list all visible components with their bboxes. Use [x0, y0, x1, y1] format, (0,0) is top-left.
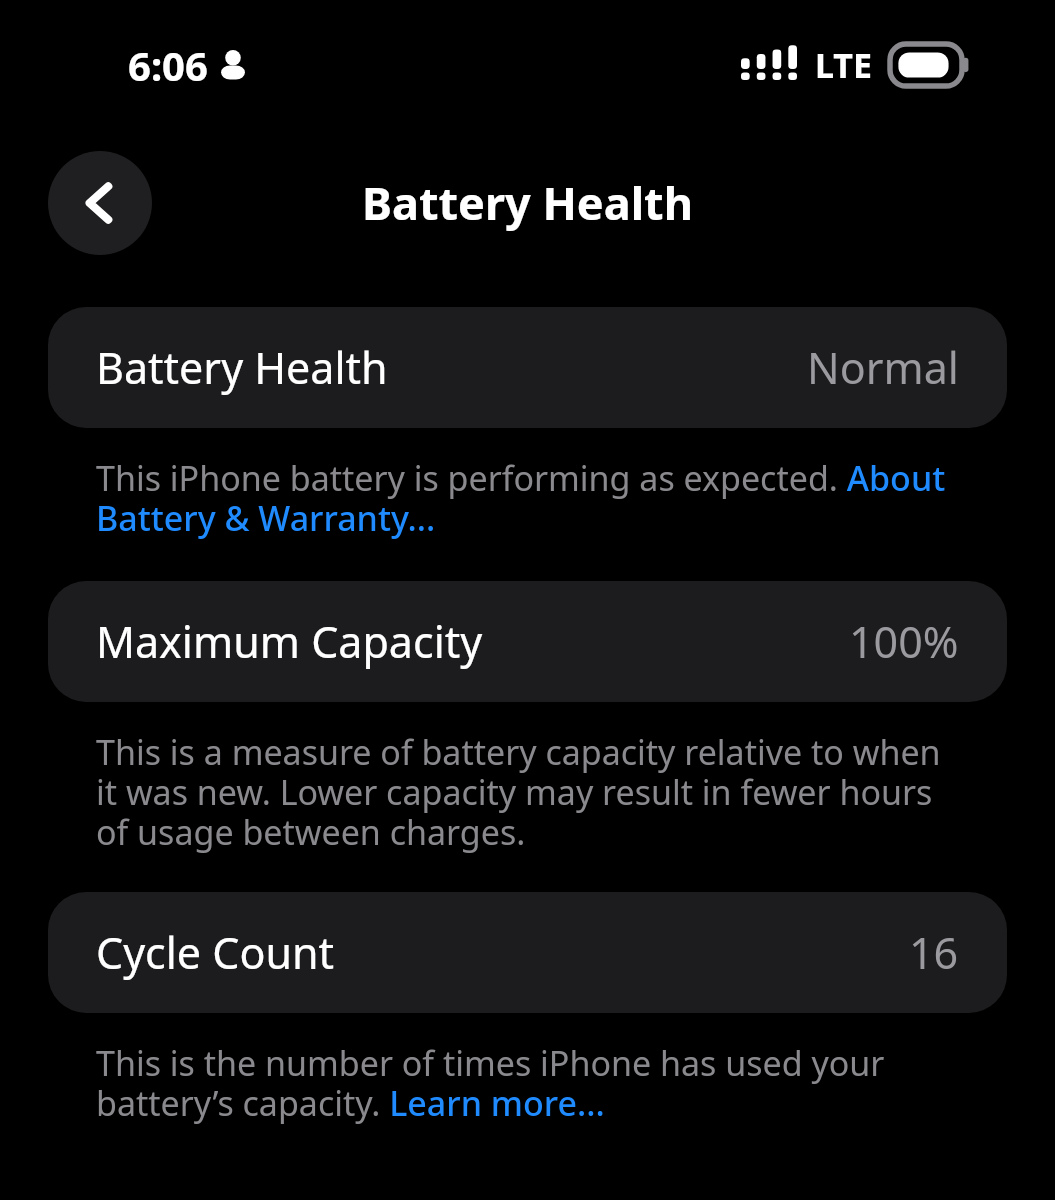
staticText: This iPhone battery is performing as exp…	[96, 455, 967, 541]
staticText: 16	[909, 923, 959, 982]
staticText: 100%	[849, 612, 959, 671]
button[interactable]: Back	[48, 151, 152, 255]
staticText: Battery Health	[362, 172, 693, 233]
staticText: Cycle Count	[96, 923, 335, 982]
staticText: Normal	[807, 338, 959, 397]
staticText: This is the number of times iPhone has u…	[96, 1040, 967, 1126]
staticText: LTE	[815, 42, 872, 88]
button[interactable]: Battery Health	[48, 307, 1007, 428]
staticText: 6:06	[128, 38, 208, 92]
button[interactable]: Cycle Count	[48, 892, 1007, 1013]
staticText: Battery Health	[96, 338, 388, 397]
button[interactable]: Maximum Capacity	[48, 581, 1007, 702]
staticText: This is a measure of battery capacity re…	[96, 729, 967, 855]
staticText: Maximum Capacity	[96, 612, 483, 671]
